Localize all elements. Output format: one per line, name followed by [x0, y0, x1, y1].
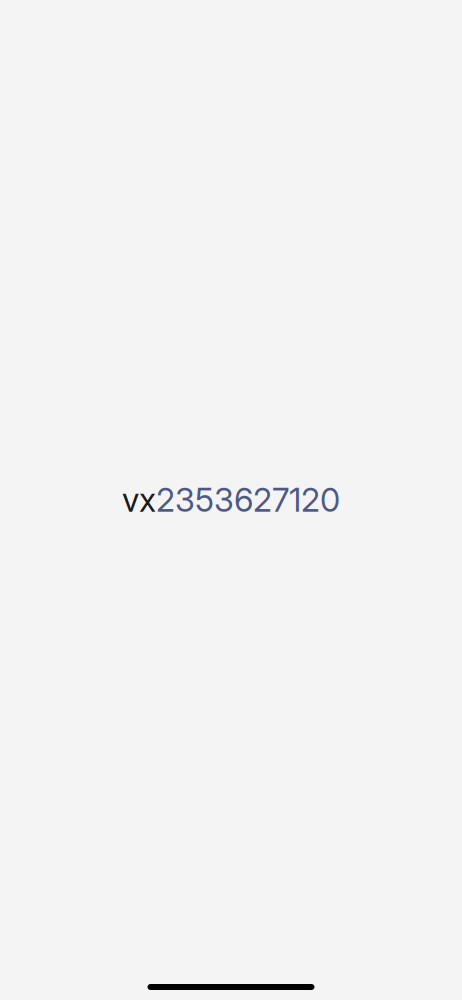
button[interactable]: vx [122, 480, 340, 520]
staticText: 2353627120 [156, 480, 340, 520]
staticText: vx [122, 480, 156, 520]
